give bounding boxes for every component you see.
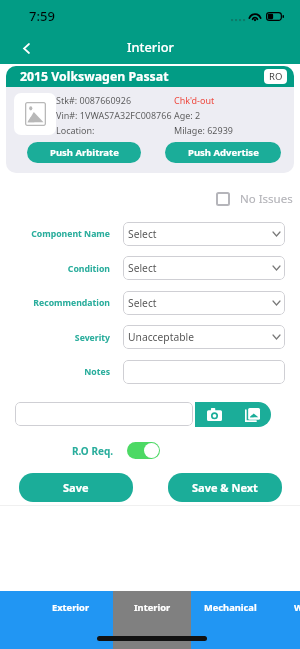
button[interactable]: Select xyxy=(123,291,285,315)
button[interactable]: Choose from gallery xyxy=(233,402,271,427)
staticText: Milage: 62939 xyxy=(174,124,233,136)
staticText: Age: 2 xyxy=(174,109,201,121)
staticText: Push Advertise xyxy=(188,146,259,159)
button[interactable]: Take photo xyxy=(195,402,233,427)
staticText: Recommendation xyxy=(22,297,110,309)
staticText: Mechanical xyxy=(204,601,257,614)
button[interactable] xyxy=(15,402,193,426)
staticText: 2015 Volkswagen Passat xyxy=(20,68,169,85)
button[interactable]: Save & Next xyxy=(168,473,282,502)
staticText: Location: xyxy=(56,124,174,136)
staticText: Save & Next xyxy=(192,480,258,495)
staticText: Unacceptable xyxy=(128,330,194,344)
staticText: Component Name xyxy=(22,228,110,240)
button[interactable]: Mechanical xyxy=(191,591,269,649)
button[interactable]: Back xyxy=(14,36,39,61)
button[interactable]: Select xyxy=(123,256,285,280)
staticText: Select xyxy=(128,261,157,275)
button[interactable]: Exterior xyxy=(32,591,110,649)
staticText: Exterior xyxy=(52,601,90,614)
staticText: Stk#: 0087660926 xyxy=(56,94,174,106)
staticText: Vin#: 1VWAS7A32FC008766 xyxy=(56,109,174,121)
staticText: W xyxy=(294,601,300,614)
staticText: Interior xyxy=(127,38,174,55)
staticText: RO xyxy=(269,70,283,83)
button[interactable]: Push Arbitrate xyxy=(27,142,141,163)
staticText: Notes xyxy=(22,366,110,378)
staticText: Push Arbitrate xyxy=(50,146,119,159)
staticText: No Issues xyxy=(240,191,293,207)
staticText: 7:59 xyxy=(29,7,55,25)
button[interactable] xyxy=(123,360,285,384)
staticText: Severity xyxy=(22,332,110,344)
button[interactable]: Select xyxy=(123,222,285,246)
staticText: Chk'd-out xyxy=(174,94,215,106)
button[interactable]: Push Advertise xyxy=(165,142,281,163)
button[interactable]: Interior xyxy=(113,591,191,649)
button[interactable]: Save xyxy=(19,473,133,502)
staticText: Select xyxy=(128,227,157,241)
button[interactable]: Unacceptable xyxy=(123,325,285,349)
button[interactable]: No Issues xyxy=(216,190,293,207)
staticText: Interior xyxy=(134,601,171,614)
staticText: Save xyxy=(63,480,89,495)
button[interactable] xyxy=(127,442,160,459)
button[interactable]: RO xyxy=(264,69,287,84)
staticText: Select xyxy=(128,296,157,310)
button[interactable]: W xyxy=(269,591,300,649)
staticText: R.O Req. xyxy=(72,444,114,458)
staticText: Condition xyxy=(22,263,110,275)
